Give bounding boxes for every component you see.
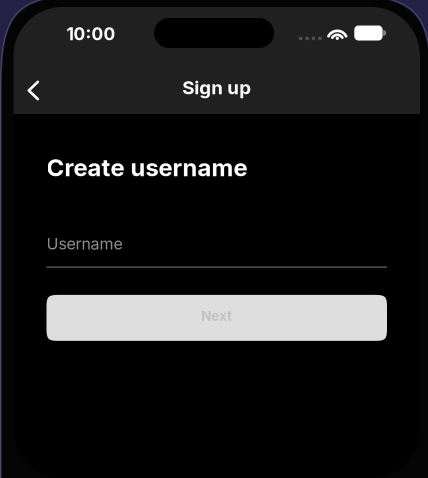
staticText: Next — [201, 308, 232, 324]
staticText: Username — [46, 234, 122, 253]
staticText: 10:00 — [66, 23, 115, 44]
button[interactable]: Next — [46, 295, 387, 341]
staticText: Sign up — [182, 76, 251, 99]
staticText: Create username — [46, 153, 247, 182]
button[interactable]: Back — [11, 67, 55, 114]
